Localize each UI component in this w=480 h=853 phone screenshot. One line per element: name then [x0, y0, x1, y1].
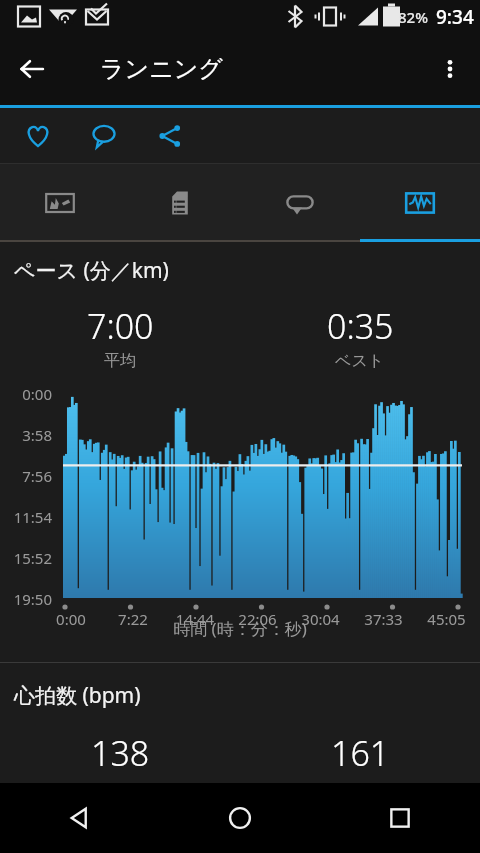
- staticText: 7:56: [0, 466, 52, 486]
- staticText: ペース (分／km): [14, 256, 169, 285]
- staticText: 19:50: [0, 589, 52, 609]
- staticText: 9:34: [436, 4, 474, 30]
- button[interactable]: Recent apps: [320, 783, 480, 853]
- staticText: 138: [91, 730, 150, 776]
- staticText: ベスト: [335, 351, 385, 371]
- button[interactable]: More options: [426, 45, 474, 93]
- button[interactable]: Graphs: [360, 164, 480, 242]
- staticText: 82%: [398, 7, 428, 27]
- staticText: 時間 (時：分：秒): [0, 617, 480, 640]
- staticText: 0:35: [327, 303, 394, 349]
- staticText: 7:00: [87, 303, 154, 349]
- staticText: 45:05: [415, 609, 478, 629]
- button[interactable]: Comment: [80, 112, 128, 160]
- button[interactable]: Share: [146, 112, 194, 160]
- staticText: 30:04: [289, 609, 352, 629]
- button[interactable]: Details: [120, 164, 240, 242]
- staticText: 心拍数 (bpm): [14, 681, 141, 710]
- staticText: 37:33: [352, 609, 415, 629]
- staticText: 161: [331, 730, 390, 776]
- button[interactable]: Like: [14, 112, 62, 160]
- staticText: 0:00: [0, 384, 52, 404]
- staticText: 3:58: [0, 425, 52, 445]
- button[interactable]: Laps: [240, 164, 360, 242]
- staticText: 22:06: [226, 609, 289, 629]
- button[interactable]: Back: [0, 783, 160, 853]
- staticText: 14:44: [164, 609, 226, 629]
- staticText: 平均: [104, 351, 136, 371]
- button[interactable]: Back: [8, 45, 56, 93]
- staticText: 15:52: [0, 548, 52, 568]
- staticText: 7:22: [102, 609, 164, 629]
- button[interactable]: Map: [0, 164, 120, 242]
- button[interactable]: Home: [160, 783, 320, 853]
- staticText: 11:54: [0, 507, 52, 527]
- staticText: 0:00: [40, 609, 102, 629]
- staticText: ランニング: [100, 54, 223, 84]
